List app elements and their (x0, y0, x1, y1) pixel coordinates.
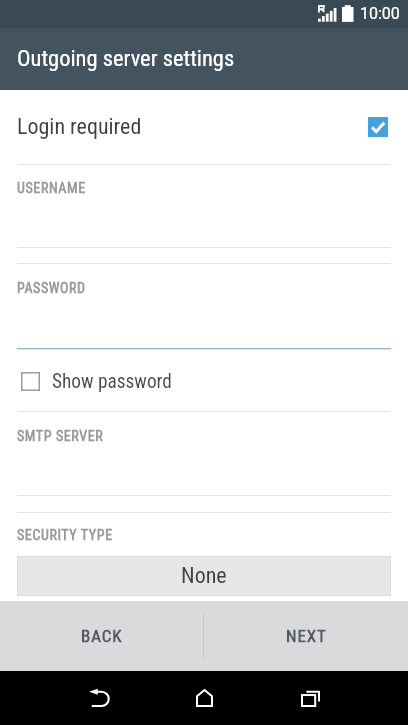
staticText: SMTP SERVER (17, 428, 104, 444)
staticText: SECURITY TYPE (17, 527, 113, 543)
staticText: 10:00 (360, 4, 400, 23)
button[interactable]: Home (169, 671, 239, 725)
button[interactable]: None (17, 556, 391, 596)
button[interactable]: BACK (0, 601, 203, 671)
button[interactable]: Back (64, 671, 134, 725)
button[interactable]: Login required (0, 90, 408, 164)
button[interactable]: Login required checkbox (368, 117, 388, 137)
button[interactable]: Recent apps (275, 671, 345, 725)
staticText: Login required (17, 114, 142, 140)
button[interactable]: NEXT (204, 601, 408, 671)
staticText: Show password (52, 370, 172, 393)
staticText: None (181, 563, 227, 589)
staticText: PASSWORD (17, 280, 86, 296)
staticText: BACK (81, 626, 123, 646)
staticText: NEXT (286, 626, 327, 646)
staticText: USERNAME (17, 180, 86, 196)
staticText: Outgoing server settings (17, 45, 235, 71)
button[interactable]: Show password (0, 351, 408, 411)
